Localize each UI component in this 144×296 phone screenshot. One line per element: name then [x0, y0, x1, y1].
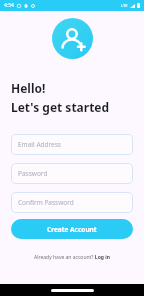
button[interactable]: Confirm Password [11, 192, 133, 213]
staticText: Already have an account? Log in [34, 254, 110, 261]
staticText: Let's get started [11, 99, 110, 115]
staticText: 4:54 [4, 2, 14, 9]
staticText: Create Account [47, 225, 97, 234]
button[interactable]: Password [11, 163, 133, 184]
button[interactable]: Already have an account? Log in [28, 251, 116, 264]
button[interactable]: Email Address [11, 134, 133, 155]
other: Add account [52, 18, 93, 59]
staticText: Hello! [11, 80, 46, 96]
staticText: Email Address [18, 140, 61, 149]
button[interactable]: Create Account [11, 219, 133, 239]
staticText: LTE [121, 3, 128, 8]
staticText: Password [18, 169, 48, 178]
staticText: Confirm Password [18, 198, 74, 207]
